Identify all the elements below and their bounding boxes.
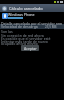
staticText: Sin conexión de red ahora: [1, 33, 44, 38]
staticText: 23,5 MB: [45, 25, 57, 29]
staticText: Detalle cancelado por el servidor rem: [1, 21, 63, 26]
other: App icon: [2, 6, 7, 11]
staticText: Windows Phone: [8, 12, 35, 17]
staticText: Velocidad de descarga: [1, 24, 38, 29]
staticText: Intentar más tarde de nuevo: [1, 39, 48, 44]
staticText: Son las: [1, 29, 13, 34]
staticText: Aceptar: [24, 46, 37, 51]
button[interactable]: Aceptar: [21, 45, 39, 51]
staticText: Es posible que el servidor esté ocupado …: [1, 36, 64, 46]
staticText: Cálculo cancelado: [9, 6, 43, 11]
